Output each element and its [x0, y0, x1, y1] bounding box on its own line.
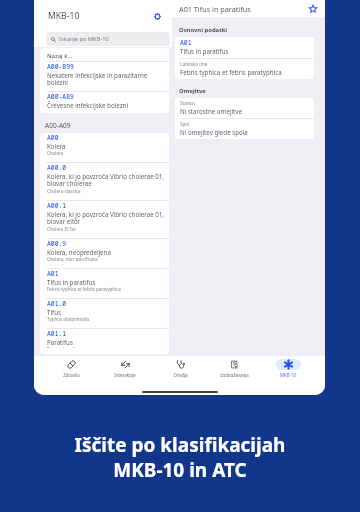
staticText: Cholera, non specificata: [47, 256, 98, 262]
staticText: Latinsko ime: [180, 61, 208, 67]
button[interactable]: Settings: [150, 9, 164, 23]
staticText: Febris typhica et febris paratyphica: [180, 68, 282, 76]
button[interactable]: A00.1: [40, 201, 169, 238]
staticText: Cholera: [47, 150, 64, 156]
button[interactable]: A00-B99: [40, 62, 169, 91]
staticText: Tifus in paratifus: [47, 278, 96, 286]
button[interactable]: A01.0: [40, 299, 169, 328]
staticText: Cholera El Tor: [47, 226, 77, 232]
staticText: A01: [180, 38, 192, 47]
button[interactable]: A00-A89: [40, 92, 169, 113]
staticText: Nekatere infekcijske in parazitarne bole…: [47, 71, 166, 87]
staticText: Interakcije: [114, 372, 136, 378]
button[interactable]: A01.1: [40, 329, 169, 354]
staticText: MKB-10: [280, 372, 296, 378]
staticText: A01.1: [47, 329, 67, 338]
staticText: Spol: [180, 121, 190, 127]
staticText: Cholera classica: [47, 188, 81, 194]
staticText: Ni starostne omejitve: [180, 107, 242, 115]
staticText: A01 Tifus in paratifus: [179, 4, 251, 14]
staticText: Typhus abdominalis: [47, 316, 90, 322]
staticText: Iskanje po MKB-10: [59, 35, 109, 43]
staticText: A01: [47, 269, 59, 278]
button[interactable]: A01: [40, 269, 169, 298]
staticText: Kolera, ki jo povzroča Vibrio cholerae 0…: [47, 172, 166, 188]
button[interactable]: Spol: [175, 119, 314, 139]
staticText: A00: [47, 133, 59, 142]
staticText: Starost: [180, 100, 196, 106]
button[interactable]: MKB-10: [261, 358, 315, 377]
button[interactable]: Zdravila: [44, 358, 98, 377]
staticText: Izobraževanja: [220, 372, 249, 378]
staticText: Osnovni podatki: [179, 26, 228, 34]
button[interactable]: Iskanje po MKB-10: [46, 32, 170, 46]
button[interactable]: A00.0: [40, 163, 169, 200]
button[interactable]: Interakcije: [98, 358, 152, 377]
staticText: Ni omejitev glede spola: [180, 128, 248, 136]
staticText: Iščite po klasifikacijah MKB-10 in ATC: [0, 432, 360, 483]
staticText: Kolera, ki jo povzroča Vibrio cholerae 0…: [47, 210, 166, 226]
staticText: A00-A89: [47, 92, 74, 101]
button[interactable]: Latinsko ime: [175, 59, 314, 79]
staticText: Omejitve: [179, 87, 206, 95]
staticText: Črevesne infekcijske bolezni: [47, 101, 128, 109]
button[interactable]: Starost: [175, 98, 314, 118]
button[interactable]: Add to favourites: [307, 3, 319, 15]
staticText: Paratyphus A: [47, 346, 75, 348]
staticText: A00-B99: [47, 62, 74, 71]
button[interactable]: Izobraževanja: [207, 358, 261, 377]
staticText: Nazaj k…: [47, 52, 73, 60]
staticText: Paratifus: [47, 338, 73, 346]
staticText: Febris typhica et febris paratyphica: [47, 286, 121, 292]
staticText: MKB-10: [48, 10, 80, 22]
staticText: Tifus in paratifus: [180, 47, 229, 55]
button[interactable]: A01: [175, 37, 314, 58]
staticText: A00.9: [47, 239, 67, 248]
button[interactable]: Orodja: [153, 358, 207, 377]
staticText: Kolera, neopredeljena: [47, 248, 111, 256]
staticText: Tifus: [47, 308, 61, 316]
staticText: A00-A09: [45, 121, 71, 130]
staticText: Orodja: [173, 372, 188, 378]
button[interactable]: A00.9: [40, 239, 169, 268]
staticText: Zdravila: [63, 372, 80, 378]
staticText: A01.0: [47, 299, 67, 308]
staticText: A00.1: [47, 201, 67, 210]
staticText: Kolera: [47, 142, 66, 150]
button[interactable]: Nazaj k…: [40, 48, 169, 61]
button[interactable]: A00: [40, 133, 169, 162]
staticText: A00.0: [47, 163, 67, 172]
